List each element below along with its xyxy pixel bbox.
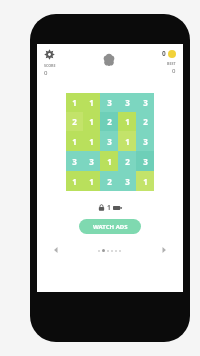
staticText: 3: [89, 156, 94, 167]
staticText: 1: [107, 156, 112, 167]
staticText: 0: [44, 69, 48, 77]
staticText: 3: [107, 136, 112, 147]
button[interactable]: 1: [94, 201, 126, 214]
button[interactable]: 2: [100, 112, 118, 131]
button[interactable]: 3: [136, 151, 154, 171]
staticText: 0: [162, 49, 166, 58]
button[interactable]: Brain: [102, 53, 116, 67]
staticText: 1: [125, 116, 130, 127]
staticText: 2: [143, 116, 148, 127]
button[interactable]: 1: [66, 93, 83, 112]
button[interactable]: 2: [118, 151, 136, 171]
button[interactable]: 2: [136, 112, 154, 131]
button[interactable]: 1: [83, 112, 100, 131]
staticText: 1: [143, 176, 148, 187]
staticText: 2: [125, 156, 130, 167]
staticText: 3: [72, 156, 77, 167]
staticText: 3: [125, 97, 130, 108]
button[interactable]: 1: [83, 171, 100, 191]
button[interactable]: 1: [118, 112, 136, 131]
staticText: 1: [107, 203, 111, 212]
staticText: BEST: [167, 61, 176, 66]
button[interactable]: 3: [100, 131, 118, 151]
button[interactable]: 1: [83, 93, 100, 112]
button[interactable]: 1: [66, 131, 83, 151]
button[interactable]: 1: [83, 131, 100, 151]
button[interactable]: 0: [160, 47, 178, 77]
staticText: 1: [89, 97, 94, 108]
staticText: 1: [72, 136, 77, 147]
staticText: 2: [72, 116, 77, 127]
button[interactable]: 3: [66, 151, 83, 171]
staticText: WATCH ADS: [93, 223, 128, 231]
button[interactable]: 3: [118, 93, 136, 112]
staticText: SCORE: [44, 63, 56, 68]
button[interactable]: 3: [136, 93, 154, 112]
staticText: 1: [72, 176, 77, 187]
button[interactable]: 2: [66, 112, 83, 131]
staticText: 3: [107, 97, 112, 108]
button[interactable]: 1: [100, 151, 118, 171]
staticText: 2: [107, 176, 112, 187]
staticText: 3: [125, 176, 130, 187]
button[interactable]: 3: [83, 151, 100, 171]
staticText: 1: [89, 176, 94, 187]
button[interactable]: 3: [100, 93, 118, 112]
staticText: 1: [125, 136, 130, 147]
button[interactable]: 1: [136, 171, 154, 191]
staticText: 3: [143, 97, 148, 108]
button[interactable]: Settings: [42, 47, 58, 79]
button[interactable]: 1: [66, 171, 83, 191]
button[interactable]: WATCH ADS: [79, 219, 141, 234]
staticText: 1: [89, 116, 94, 127]
button[interactable]: 2: [100, 171, 118, 191]
staticText: 1: [89, 136, 94, 147]
button[interactable]: [102, 249, 105, 252]
button[interactable]: 3: [118, 171, 136, 191]
staticText: 1: [72, 97, 77, 108]
staticText: 2: [107, 116, 112, 127]
button[interactable]: Next: [159, 245, 169, 255]
button[interactable]: Previous: [51, 245, 61, 255]
staticText: 3: [143, 136, 148, 147]
staticText: 3: [143, 156, 148, 167]
staticText: 0: [172, 67, 176, 75]
button[interactable]: 1: [118, 131, 136, 151]
button[interactable]: 3: [136, 131, 154, 151]
